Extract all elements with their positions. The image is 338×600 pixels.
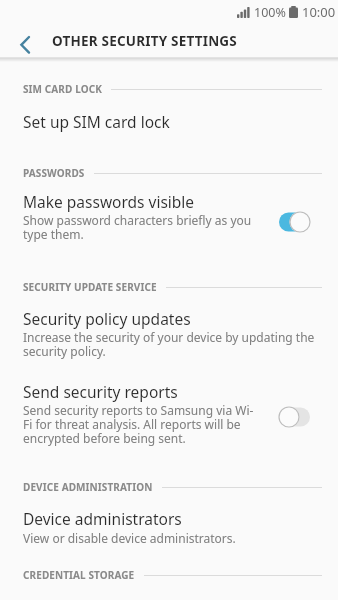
- button[interactable]: Send security reports: [0, 377, 338, 449]
- button[interactable]: Set up SIM card lock: [0, 100, 338, 146]
- button[interactable]: [278, 211, 311, 233]
- staticText: 10:00: [302, 3, 336, 21]
- staticText: 100%: [254, 4, 286, 21]
- button[interactable]: Device administrators: [0, 504, 338, 552]
- staticText: SECURITY UPDATE SERVICE: [23, 280, 157, 294]
- staticText: Show password characters briefly as you …: [23, 212, 273, 242]
- staticText: Set up SIM card lock: [23, 111, 170, 132]
- staticText: Make passwords visible: [23, 191, 195, 212]
- staticText: Device administrators: [23, 508, 182, 529]
- staticText: OTHER SECURITY SETTINGS: [52, 32, 237, 50]
- button[interactable]: Make passwords visible: [0, 188, 338, 250]
- staticText: PASSWORDS: [23, 166, 85, 180]
- staticText: Security policy updates: [23, 308, 191, 329]
- button[interactable]: Security policy updates: [0, 304, 338, 364]
- button[interactable]: [278, 406, 311, 428]
- staticText: Increase the security of your device by …: [23, 329, 323, 359]
- staticText: Send security reports to Samsung via Wi-…: [23, 402, 273, 446]
- staticText: SIM CARD LOCK: [23, 82, 102, 96]
- staticText: Send security reports: [23, 381, 178, 402]
- staticText: DEVICE ADMINISTRATION: [23, 480, 153, 494]
- staticText: CREDENTIAL STORAGE: [23, 568, 135, 582]
- staticText: View or disable device administrators.: [23, 530, 323, 546]
- button[interactable]: [8, 27, 40, 55]
